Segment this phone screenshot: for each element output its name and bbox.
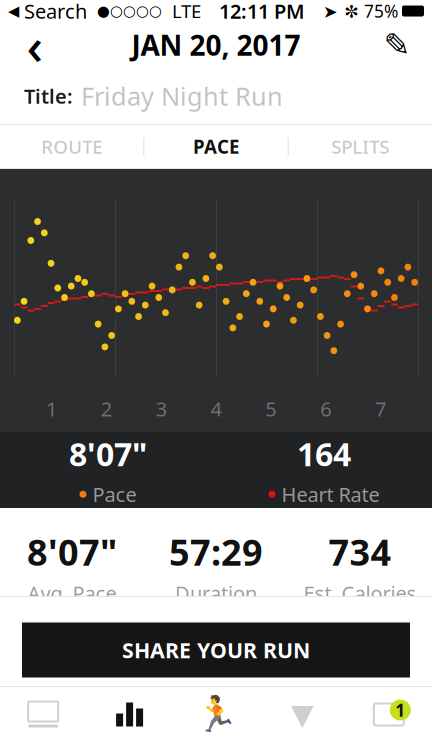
staticText: LTE <box>172 0 201 23</box>
button[interactable]: Inbox, 1 new <box>346 686 432 742</box>
staticText: ROUTE <box>41 134 102 159</box>
staticText: ‹ <box>26 11 43 79</box>
staticText: SHARE YOUR RUN <box>122 636 310 664</box>
button[interactable]: Edit <box>370 22 424 68</box>
staticText: 7 <box>375 395 386 422</box>
staticText: 8'07" <box>69 432 147 475</box>
staticText: 164 <box>297 432 351 475</box>
button[interactable]: Activity <box>86 686 173 742</box>
staticText: ▼ <box>291 698 314 731</box>
staticText: Duration <box>175 580 257 606</box>
button[interactable]: Back <box>8 22 62 68</box>
button[interactable]: PACE <box>144 124 288 169</box>
staticText: Search <box>19 0 87 24</box>
staticText: 🏃 <box>194 695 237 734</box>
staticText: Heart Rate <box>281 481 379 508</box>
staticText: 12:11 PM <box>219 0 305 24</box>
staticText: ➤ ✼ 75% <box>323 0 398 22</box>
staticText: 57:29 <box>169 528 263 576</box>
staticText: 8'07" <box>27 528 117 576</box>
staticText: 5 <box>265 395 276 422</box>
staticText: 3 <box>156 395 167 422</box>
button[interactable]: Feed <box>0 686 86 742</box>
staticText: 2 <box>101 395 112 422</box>
staticText: ●○○○○ <box>87 3 172 19</box>
staticText: ◀ <box>8 3 19 19</box>
staticText: ✎ <box>383 27 410 63</box>
staticText: 4 <box>210 395 221 422</box>
staticText: PACE <box>193 134 239 159</box>
staticText: 1 <box>46 395 57 422</box>
staticText: JAN 20, 2017 <box>131 26 300 64</box>
staticText: Pace <box>92 481 136 508</box>
button[interactable]: ROUTE <box>0 124 143 169</box>
button[interactable]: Coach <box>259 686 346 742</box>
button[interactable]: SPLITS <box>289 124 432 169</box>
staticText: Avg. Pace <box>27 580 116 606</box>
button[interactable]: SHARE YOUR RUN <box>22 622 410 677</box>
staticText: Est. Calories <box>303 580 416 606</box>
staticText: Friday Night Run <box>81 79 283 113</box>
staticText: Title: <box>24 83 73 109</box>
staticText: SPLITS <box>331 134 389 159</box>
staticText: 6 <box>320 395 331 422</box>
staticText: 734 <box>328 528 391 576</box>
staticText: 1 <box>395 698 405 721</box>
button[interactable]: Start Run <box>173 686 259 742</box>
